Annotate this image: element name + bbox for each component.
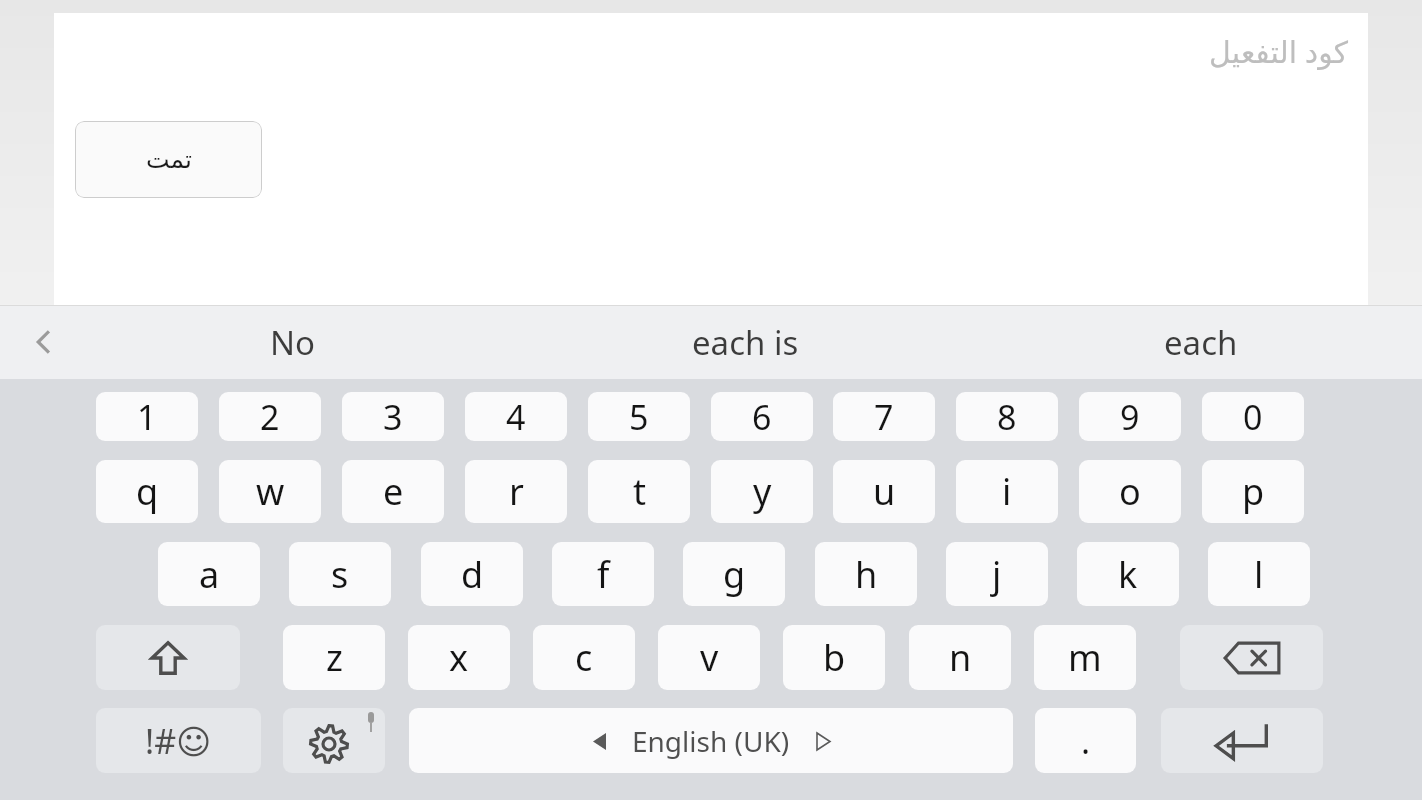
button[interactable]: . [1035, 708, 1136, 773]
button[interactable]: Shift [96, 625, 240, 690]
staticText: 1 [137, 394, 157, 440]
button[interactable]: Backspace [1180, 625, 1323, 690]
staticText: c [575, 633, 593, 682]
staticText: 3 [383, 394, 403, 440]
staticText: كود التفعيل [1114, 31, 1348, 72]
staticText: . [1081, 718, 1091, 764]
button[interactable]: t [588, 460, 690, 523]
button[interactable]: تمت [75, 121, 262, 198]
staticText: No [270, 320, 316, 365]
button[interactable]: each [1080, 305, 1322, 379]
staticText: r [509, 467, 524, 516]
button[interactable]: Keyboard settings [283, 708, 385, 773]
button[interactable]: 5 [588, 392, 690, 441]
staticText: i [1002, 467, 1012, 516]
staticText: 4 [506, 394, 526, 440]
button[interactable]: 6 [711, 392, 813, 441]
button[interactable]: p [1202, 460, 1304, 523]
staticText: 9 [1120, 394, 1140, 440]
staticText: l [1254, 550, 1264, 599]
staticText: w [256, 467, 285, 516]
button[interactable]: Symbols and emoji [96, 708, 261, 773]
staticText: g [723, 550, 746, 599]
button[interactable]: i [956, 460, 1058, 523]
staticText: j [992, 550, 1002, 599]
staticText: 5 [629, 394, 649, 440]
staticText: 8 [997, 394, 1017, 440]
staticText: o [1119, 467, 1141, 516]
button[interactable]: f [552, 542, 654, 606]
button[interactable]: 3 [342, 392, 444, 441]
staticText: f [597, 550, 610, 599]
staticText: q [136, 467, 159, 516]
button[interactable]: e [342, 460, 444, 523]
button[interactable]: x [408, 625, 510, 690]
button[interactable]: 7 [833, 392, 935, 441]
button[interactable]: No [170, 305, 415, 379]
button[interactable]: u [833, 460, 935, 523]
button[interactable]: c [533, 625, 635, 690]
button[interactable]: Previous suggestions [16, 305, 70, 379]
staticText: e [383, 467, 404, 516]
button[interactable]: k [1077, 542, 1179, 606]
button[interactable]: 2 [219, 392, 321, 441]
button[interactable]: m [1034, 625, 1136, 690]
button[interactable]: o [1079, 460, 1181, 523]
button[interactable]: 4 [465, 392, 567, 441]
button[interactable]: h [815, 542, 917, 606]
staticText: English (UK) [632, 722, 790, 760]
staticText: a [199, 550, 220, 599]
button[interactable]: r [465, 460, 567, 523]
button[interactable]: g [683, 542, 785, 606]
button[interactable]: n [909, 625, 1011, 690]
button[interactable]: d [421, 542, 523, 606]
staticText: 6 [752, 394, 772, 440]
staticText: !#☺ [145, 718, 212, 764]
button[interactable]: z [283, 625, 385, 690]
button[interactable]: l [1208, 542, 1310, 606]
staticText: تمت [146, 145, 192, 174]
staticText: s [331, 550, 349, 599]
button[interactable]: 0 [1202, 392, 1304, 441]
staticText: t [633, 467, 646, 516]
button[interactable]: w [219, 460, 321, 523]
staticText: v [700, 633, 719, 682]
staticText: 7 [874, 394, 894, 440]
staticText: n [949, 633, 972, 682]
button[interactable]: 9 [1079, 392, 1181, 441]
button[interactable]: j [946, 542, 1048, 606]
staticText: each [1164, 320, 1238, 365]
button[interactable]: y [711, 460, 813, 523]
button[interactable]: Enter [1161, 708, 1323, 773]
staticText: b [823, 633, 846, 682]
staticText: k [1118, 550, 1138, 599]
button[interactable]: b [783, 625, 885, 690]
button[interactable]: each is [620, 305, 870, 379]
staticText: y [753, 467, 772, 516]
staticText: p [1242, 467, 1265, 516]
staticText: 2 [260, 394, 280, 440]
button[interactable]: 8 [956, 392, 1058, 441]
staticText: z [326, 633, 343, 682]
button[interactable]: a [158, 542, 260, 606]
staticText: 0 [1243, 394, 1263, 440]
button[interactable]: 1 [96, 392, 198, 441]
button[interactable]: s [289, 542, 391, 606]
staticText: u [873, 467, 896, 516]
staticText: d [461, 550, 484, 599]
button[interactable]: v [658, 625, 760, 690]
button[interactable]: q [96, 460, 198, 523]
staticText: h [855, 550, 878, 599]
staticText: x [449, 633, 469, 682]
staticText: m [1068, 633, 1102, 682]
staticText: each is [692, 320, 799, 365]
button[interactable]: English (UK) [409, 708, 1013, 773]
